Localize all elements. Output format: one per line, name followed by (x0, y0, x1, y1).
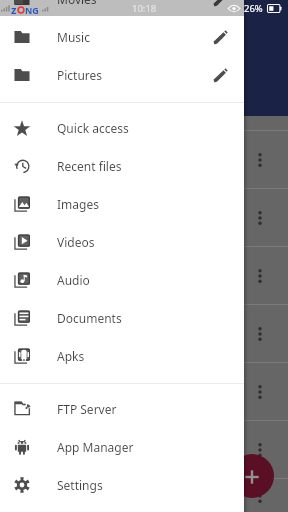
button[interactable]: More options (250, 440, 270, 460)
staticText: App Manager (57, 439, 134, 455)
button[interactable]: Pictures (0, 56, 244, 94)
button[interactable]: FTP Server (0, 390, 244, 428)
button[interactable]: More options (0, 479, 288, 512)
staticText: FTP Server (57, 401, 117, 417)
staticText: Documents (57, 310, 122, 326)
button[interactable]: More options (250, 150, 270, 170)
button[interactable]: App Manager (0, 428, 244, 466)
button[interactable]: Videos (0, 223, 244, 261)
staticText: Videos (57, 234, 95, 250)
button[interactable]: More options (0, 421, 288, 478)
button[interactable]: Music (0, 18, 244, 56)
staticText: Quick access (57, 120, 129, 136)
button[interactable]: More options (250, 486, 270, 506)
button[interactable]: Edit (209, 26, 231, 48)
button[interactable]: Recent files (0, 147, 244, 185)
button[interactable]: More options (0, 247, 288, 304)
staticText: Pictures (57, 67, 103, 83)
staticText: 26% (244, 2, 263, 15)
staticText: Recent files (57, 158, 122, 174)
staticText: z (11, 2, 17, 17)
button[interactable]: More options (0, 305, 288, 362)
button[interactable]: More options (250, 324, 270, 344)
button[interactable]: Documents (0, 299, 244, 337)
button[interactable]: More options (250, 266, 270, 286)
button[interactable]: More options (0, 131, 288, 188)
button[interactable]: More options (0, 189, 288, 246)
button[interactable]: More options (250, 382, 270, 402)
button[interactable]: Quick access (0, 109, 244, 147)
staticText: Images (57, 196, 99, 212)
button[interactable]: Apks (0, 337, 244, 375)
button[interactable]: Images (0, 185, 244, 223)
staticText: Settings (57, 477, 103, 493)
staticText: Audio (57, 272, 90, 288)
button[interactable]: Settings (0, 466, 244, 504)
button[interactable]: Audio (0, 261, 244, 299)
staticText: Apks (57, 348, 85, 364)
button[interactable]: Edit (209, 0, 231, 10)
button[interactable]: Movies (0, 0, 244, 18)
staticText: NG (25, 4, 39, 16)
button[interactable]: More options (250, 208, 270, 228)
button[interactable]: More options (0, 363, 288, 420)
button[interactable]: Add (230, 454, 274, 498)
staticText: Movies (57, 0, 97, 7)
staticText: Music (57, 29, 90, 45)
button[interactable]: Edit (209, 64, 231, 86)
staticText: 10:18 (132, 2, 157, 15)
